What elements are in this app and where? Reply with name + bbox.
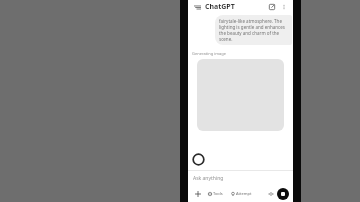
button[interactable]: fairytale-like atmosphere. The lighting …: [215, 15, 292, 45]
staticText: Generating image: [192, 51, 226, 56]
button[interactable]: Dictate: [266, 189, 276, 199]
button[interactable]: Open navigation menu: [192, 2, 202, 12]
button[interactable]: Stop generating: [277, 188, 289, 200]
staticText: Tools: [213, 191, 223, 196]
staticText: fairytale-like atmosphere. The lighting …: [219, 18, 288, 42]
button[interactable]: Attempt: [228, 189, 255, 198]
staticText: ChatGPT: [205, 2, 235, 12]
staticText: Ask anything: [193, 175, 224, 182]
button[interactable]: Ask anything: [188, 171, 293, 185]
button[interactable]: Tools: [205, 189, 226, 198]
button[interactable]: Add attachment: [192, 188, 203, 199]
button[interactable]: New chat: [267, 2, 277, 12]
staticText: Attempt: [236, 191, 252, 196]
button[interactable]: More options: [279, 2, 289, 12]
